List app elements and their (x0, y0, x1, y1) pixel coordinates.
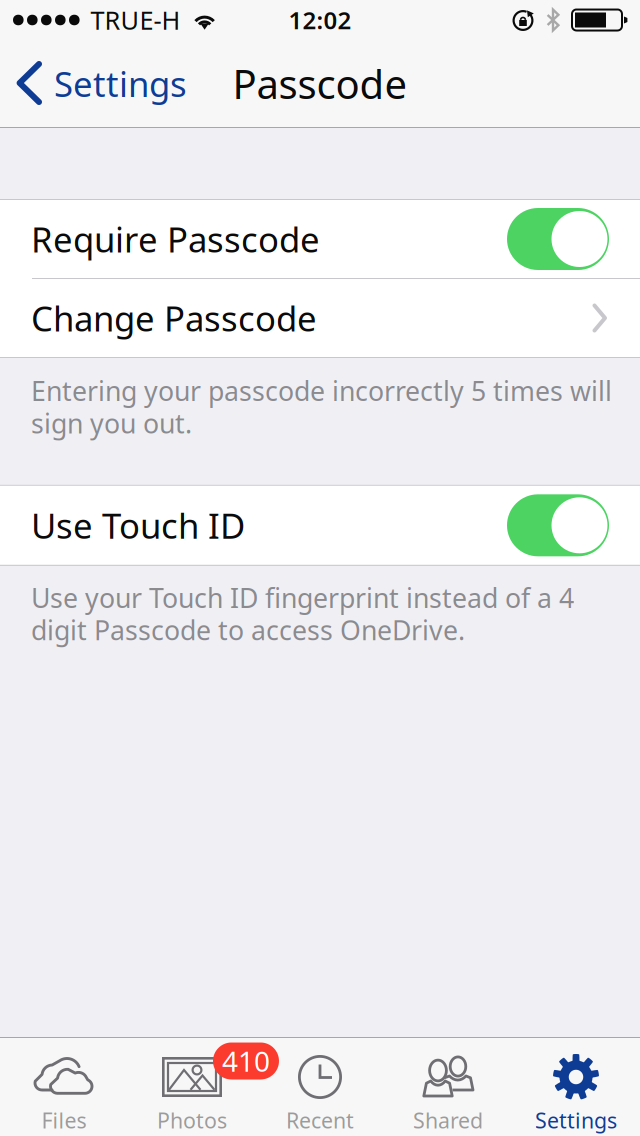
staticText: Files (41, 1106, 86, 1134)
staticText: digit Passcode to access OneDrive. (31, 612, 465, 648)
button[interactable]: Toggle (507, 494, 609, 556)
staticText: Entering your passcode incorrectly 5 tim… (31, 373, 612, 408)
button[interactable]: Settings (0, 40, 199, 127)
button[interactable]: Settings (512, 1038, 640, 1136)
staticText: Shared (413, 1106, 483, 1134)
staticText: Require Passcode (31, 216, 320, 262)
button[interactable]: Change Passcode (0, 279, 640, 357)
staticText: sign you out. (31, 405, 192, 441)
button[interactable]: Require Passcode (0, 200, 640, 278)
button[interactable]: Toggle (507, 208, 609, 270)
button[interactable]: Recent (256, 1038, 384, 1136)
button[interactable]: Use Touch ID (0, 486, 640, 565)
staticText: Use your Touch ID fingerprint instead of… (31, 580, 574, 615)
staticText: Settings (535, 1106, 617, 1134)
staticText: Recent (286, 1106, 354, 1134)
staticText: 12:02 (288, 4, 351, 36)
staticText: Change Passcode (31, 295, 317, 341)
staticText: Settings (54, 60, 187, 106)
button[interactable]: Files (0, 1038, 128, 1136)
button[interactable]: Shared (384, 1038, 512, 1136)
staticText: 410 (222, 1042, 270, 1080)
staticText: Passcode (232, 57, 407, 110)
staticText: Photos (157, 1106, 227, 1134)
staticText: Use Touch ID (31, 502, 245, 548)
button[interactable]: Photos (128, 1038, 256, 1136)
staticText: TRUE-H (91, 3, 181, 37)
